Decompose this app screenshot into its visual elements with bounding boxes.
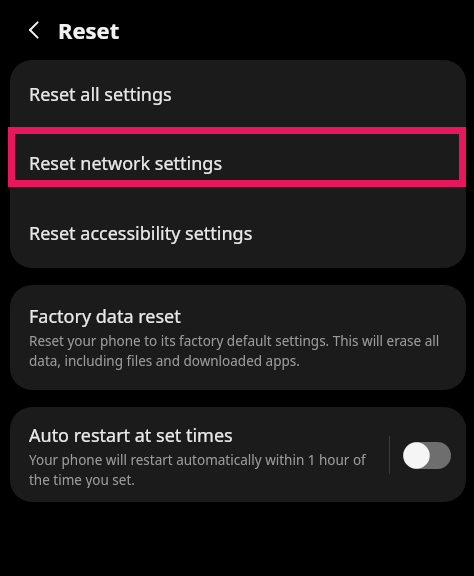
staticText: Factory data reset xyxy=(29,304,181,329)
button[interactable]: Back xyxy=(16,12,52,48)
button[interactable]: Reset network settings xyxy=(10,128,466,198)
button[interactable]: Reset all settings xyxy=(10,60,466,128)
staticText: Auto restart at set times xyxy=(29,423,233,448)
staticText: Reset network settings xyxy=(29,151,223,176)
staticText: Reset your phone to its factory default … xyxy=(29,332,444,370)
staticText: Reset all settings xyxy=(29,82,172,107)
button[interactable]: Auto restart at set times xyxy=(10,407,466,502)
staticText: Your phone will restart automatically wi… xyxy=(29,451,387,488)
staticText: Reset xyxy=(58,15,120,45)
button[interactable]: Factory data reset xyxy=(10,285,466,390)
button[interactable]: Reset accessibility settings xyxy=(10,198,466,268)
staticText: Reset accessibility settings xyxy=(29,221,253,246)
button[interactable]: Auto restart toggle xyxy=(402,435,452,475)
